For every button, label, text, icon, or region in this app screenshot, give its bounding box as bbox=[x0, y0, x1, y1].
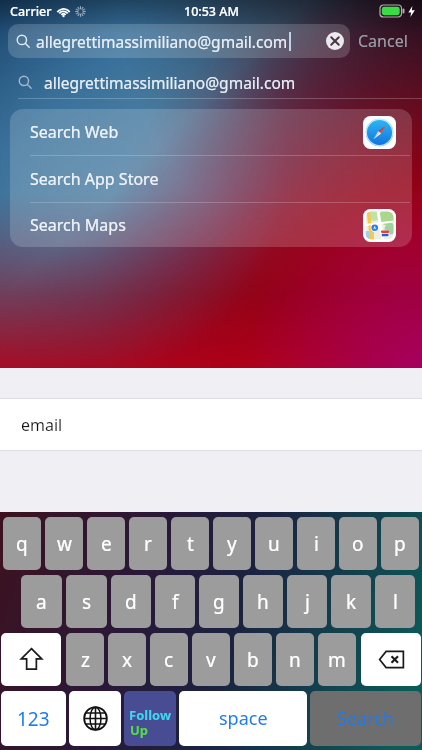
staticText: Search App Store bbox=[30, 168, 159, 190]
staticText: d bbox=[125, 589, 137, 615]
button[interactable]: email bbox=[0, 399, 422, 450]
staticText: Search Web bbox=[30, 121, 119, 143]
staticText: f bbox=[172, 589, 179, 615]
button[interactable]: y bbox=[213, 517, 251, 570]
button[interactable]: m bbox=[318, 633, 356, 686]
staticText: j bbox=[305, 589, 310, 615]
staticText: 10:53 AM bbox=[184, 3, 239, 20]
button[interactable]: Cancel bbox=[350, 26, 416, 56]
button[interactable]: e bbox=[87, 517, 125, 570]
button[interactable]: Shift bbox=[1, 633, 61, 686]
button[interactable]: h bbox=[243, 575, 283, 628]
staticText: z bbox=[81, 647, 90, 673]
button[interactable]: Switch keyboard bbox=[69, 691, 121, 746]
button[interactable]: i bbox=[297, 517, 335, 570]
button[interactable]: 123 bbox=[1, 691, 66, 746]
button[interactable]: Search Maps bbox=[10, 203, 412, 247]
button[interactable]: n bbox=[276, 633, 314, 686]
button[interactable]: Clear text bbox=[326, 32, 344, 50]
staticText: p bbox=[394, 531, 406, 557]
staticText: email bbox=[21, 414, 63, 436]
staticText: i bbox=[314, 531, 319, 557]
button[interactable]: Search Web bbox=[10, 109, 412, 155]
staticText: c bbox=[164, 647, 174, 673]
button[interactable]: Search App Store bbox=[10, 156, 412, 202]
staticText: q bbox=[16, 531, 28, 557]
staticText: Search Maps bbox=[30, 214, 126, 236]
staticText: v bbox=[206, 647, 216, 673]
staticText: t bbox=[187, 531, 194, 557]
button[interactable]: v bbox=[192, 633, 230, 686]
staticText: s bbox=[82, 589, 92, 615]
staticText: 123 bbox=[17, 706, 50, 732]
button[interactable]: allegrettimassimiliano@gmail.com bbox=[8, 24, 350, 58]
staticText: a bbox=[36, 589, 47, 615]
button[interactable]: space bbox=[179, 691, 307, 746]
staticText: Follow bbox=[129, 706, 172, 724]
staticText: allegrettimassimiliano@gmail.com bbox=[36, 31, 288, 52]
staticText: n bbox=[289, 647, 301, 673]
button[interactable]: o bbox=[339, 517, 377, 570]
button[interactable]: r bbox=[129, 517, 167, 570]
button[interactable]: u bbox=[255, 517, 293, 570]
button[interactable]: l bbox=[375, 575, 415, 628]
staticText: x bbox=[122, 647, 133, 673]
staticText: y bbox=[227, 531, 237, 557]
staticText: h bbox=[257, 589, 269, 615]
button[interactable]: w bbox=[45, 517, 83, 570]
button[interactable]: f bbox=[155, 575, 195, 628]
button[interactable]: Follow Up keyboard bbox=[124, 691, 176, 746]
staticText: Search bbox=[337, 706, 394, 731]
staticText: k bbox=[346, 589, 357, 615]
button[interactable]: g bbox=[199, 575, 239, 628]
button[interactable]: a bbox=[21, 575, 62, 628]
staticText: e bbox=[101, 531, 112, 557]
staticText: allegrettimassimiliano@gmail.com bbox=[44, 72, 296, 93]
staticText: b bbox=[247, 647, 259, 673]
button[interactable]: p bbox=[381, 517, 419, 570]
button[interactable]: s bbox=[66, 575, 107, 628]
button[interactable]: d bbox=[111, 575, 151, 628]
staticText: Carrier bbox=[10, 3, 52, 20]
button[interactable]: x bbox=[108, 633, 146, 686]
button[interactable]: Search bbox=[310, 691, 421, 746]
staticText: o bbox=[352, 531, 364, 557]
button[interactable]: j bbox=[287, 575, 327, 628]
staticText: g bbox=[213, 589, 225, 615]
staticText: w bbox=[57, 531, 72, 557]
staticText: u bbox=[268, 531, 280, 557]
button[interactable]: q bbox=[3, 517, 41, 570]
staticText: l bbox=[393, 589, 398, 615]
button[interactable]: t bbox=[171, 517, 209, 570]
button[interactable]: b bbox=[234, 633, 272, 686]
staticText: Up bbox=[130, 721, 149, 739]
button[interactable]: z bbox=[66, 633, 104, 686]
button[interactable]: Backspace bbox=[361, 633, 421, 686]
button[interactable]: k bbox=[331, 575, 371, 628]
button[interactable]: c bbox=[150, 633, 188, 686]
button[interactable]: allegrettimassimiliano@gmail.com bbox=[0, 66, 422, 98]
staticText: m bbox=[328, 647, 346, 673]
staticText: space bbox=[219, 706, 268, 731]
staticText: r bbox=[144, 531, 152, 557]
staticText: Cancel bbox=[358, 30, 408, 52]
